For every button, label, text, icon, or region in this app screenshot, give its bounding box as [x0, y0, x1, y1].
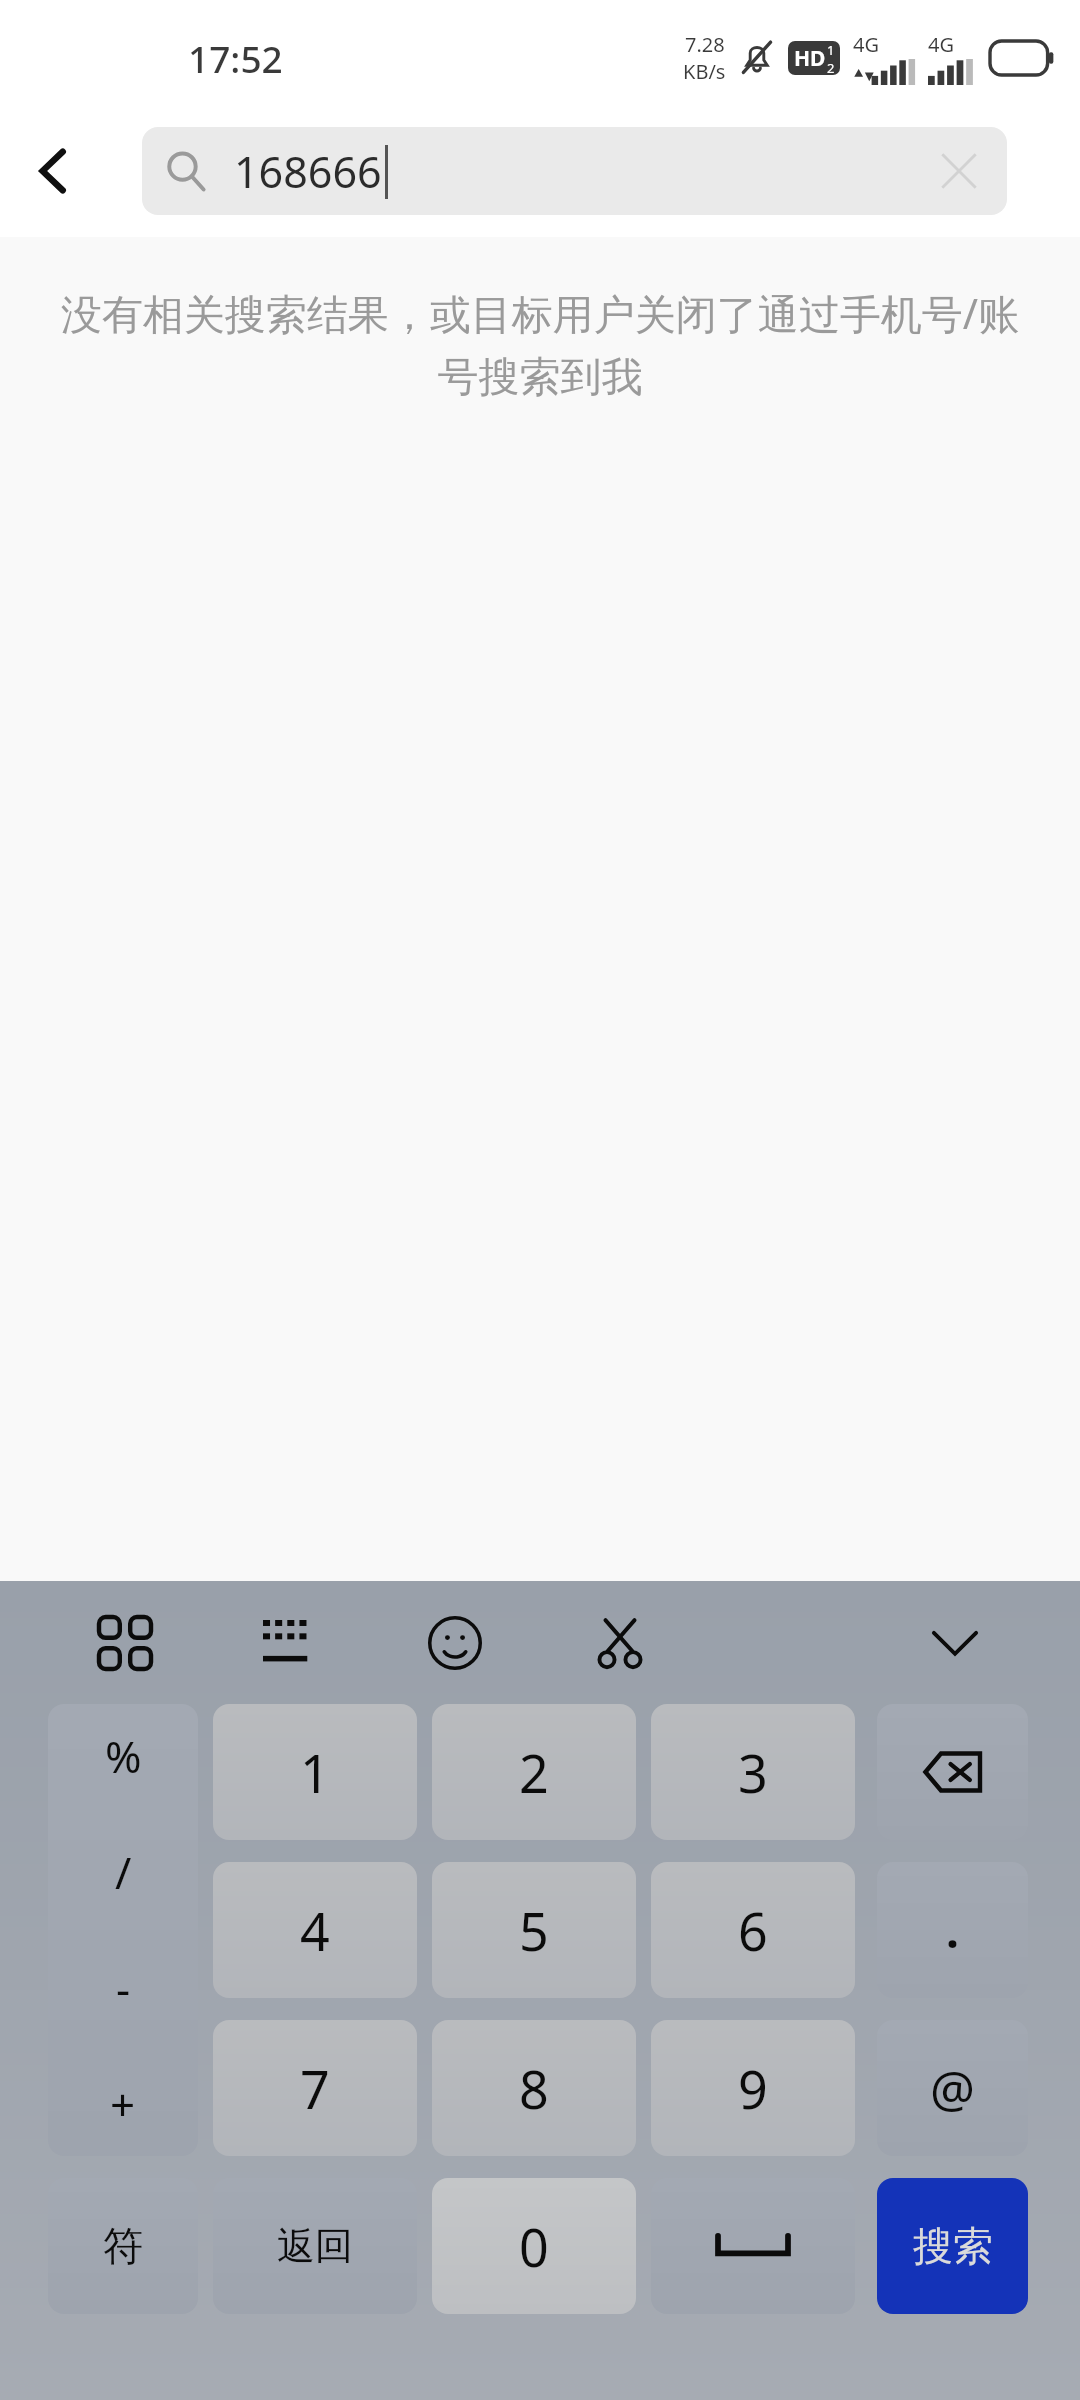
- staticText: 7.28: [685, 31, 725, 58]
- button[interactable]: 4: [213, 1862, 417, 1998]
- staticText: 4G: [928, 31, 954, 58]
- staticText: 168666: [234, 142, 382, 201]
- button[interactable]: 搜索: [877, 2178, 1028, 2314]
- button[interactable]: 1: [213, 1704, 417, 1840]
- button[interactable]: Hide keyboard: [900, 1581, 1010, 1704]
- staticText: KB/s: [683, 58, 726, 85]
- staticText: -: [116, 1958, 131, 2018]
- staticText: 6: [738, 1895, 768, 1966]
- button[interactable]: 9: [651, 2020, 855, 2156]
- staticText: 7: [300, 2053, 330, 2124]
- button[interactable]: Space: [651, 2178, 855, 2314]
- staticText: HD: [794, 44, 826, 73]
- staticText: 返回: [277, 2222, 353, 2270]
- staticText: 4: [300, 1895, 330, 1966]
- staticText: 符: [103, 2221, 143, 2271]
- button[interactable]: @: [877, 2020, 1028, 2156]
- button[interactable]: .: [877, 1862, 1028, 1998]
- staticText: 2: [519, 1737, 549, 1808]
- staticText: 9: [738, 2053, 768, 2124]
- button[interactable]: Emoji: [400, 1581, 510, 1704]
- staticText: %: [105, 1726, 142, 1786]
- staticText: 17:52: [188, 33, 283, 83]
- button[interactable]: Keyboard layout: [235, 1581, 345, 1704]
- button[interactable]: 7: [213, 2020, 417, 2156]
- button[interactable]: Clipboard: [565, 1581, 675, 1704]
- button[interactable]: 8: [432, 2020, 636, 2156]
- staticText: 没有相关搜索结果，或目标用户关闭了通过手机号/账号搜索到我: [52, 285, 1028, 403]
- staticText: 8: [519, 2053, 549, 2124]
- button[interactable]: %: [48, 1704, 198, 2156]
- staticText: 4G: [853, 31, 879, 58]
- staticText: 搜索: [913, 2221, 993, 2271]
- button[interactable]: 0: [432, 2178, 636, 2314]
- button[interactable]: 5: [432, 1862, 636, 1998]
- button[interactable]: Back: [0, 117, 108, 225]
- button[interactable]: 168666: [142, 127, 1007, 215]
- staticText: @: [930, 2054, 975, 2122]
- button[interactable]: Backspace: [877, 1704, 1028, 1840]
- button[interactable]: 返回: [213, 2178, 417, 2314]
- button[interactable]: 3: [651, 1704, 855, 1840]
- staticText: 5: [519, 1895, 549, 1966]
- button[interactable]: Panels: [70, 1581, 180, 1704]
- button[interactable]: 符: [48, 2178, 198, 2314]
- button[interactable]: 2: [432, 1704, 636, 1840]
- staticText: /: [115, 1842, 132, 1902]
- staticText: 1: [300, 1737, 330, 1808]
- staticText: .: [946, 1899, 959, 1962]
- button[interactable]: Clear: [911, 127, 1007, 215]
- staticText: +: [110, 2074, 136, 2134]
- staticText: 2: [827, 59, 835, 75]
- staticText: 3: [738, 1737, 768, 1808]
- button[interactable]: 6: [651, 1862, 855, 1998]
- staticText: 1: [827, 41, 835, 59]
- staticText: 0: [519, 2211, 549, 2282]
